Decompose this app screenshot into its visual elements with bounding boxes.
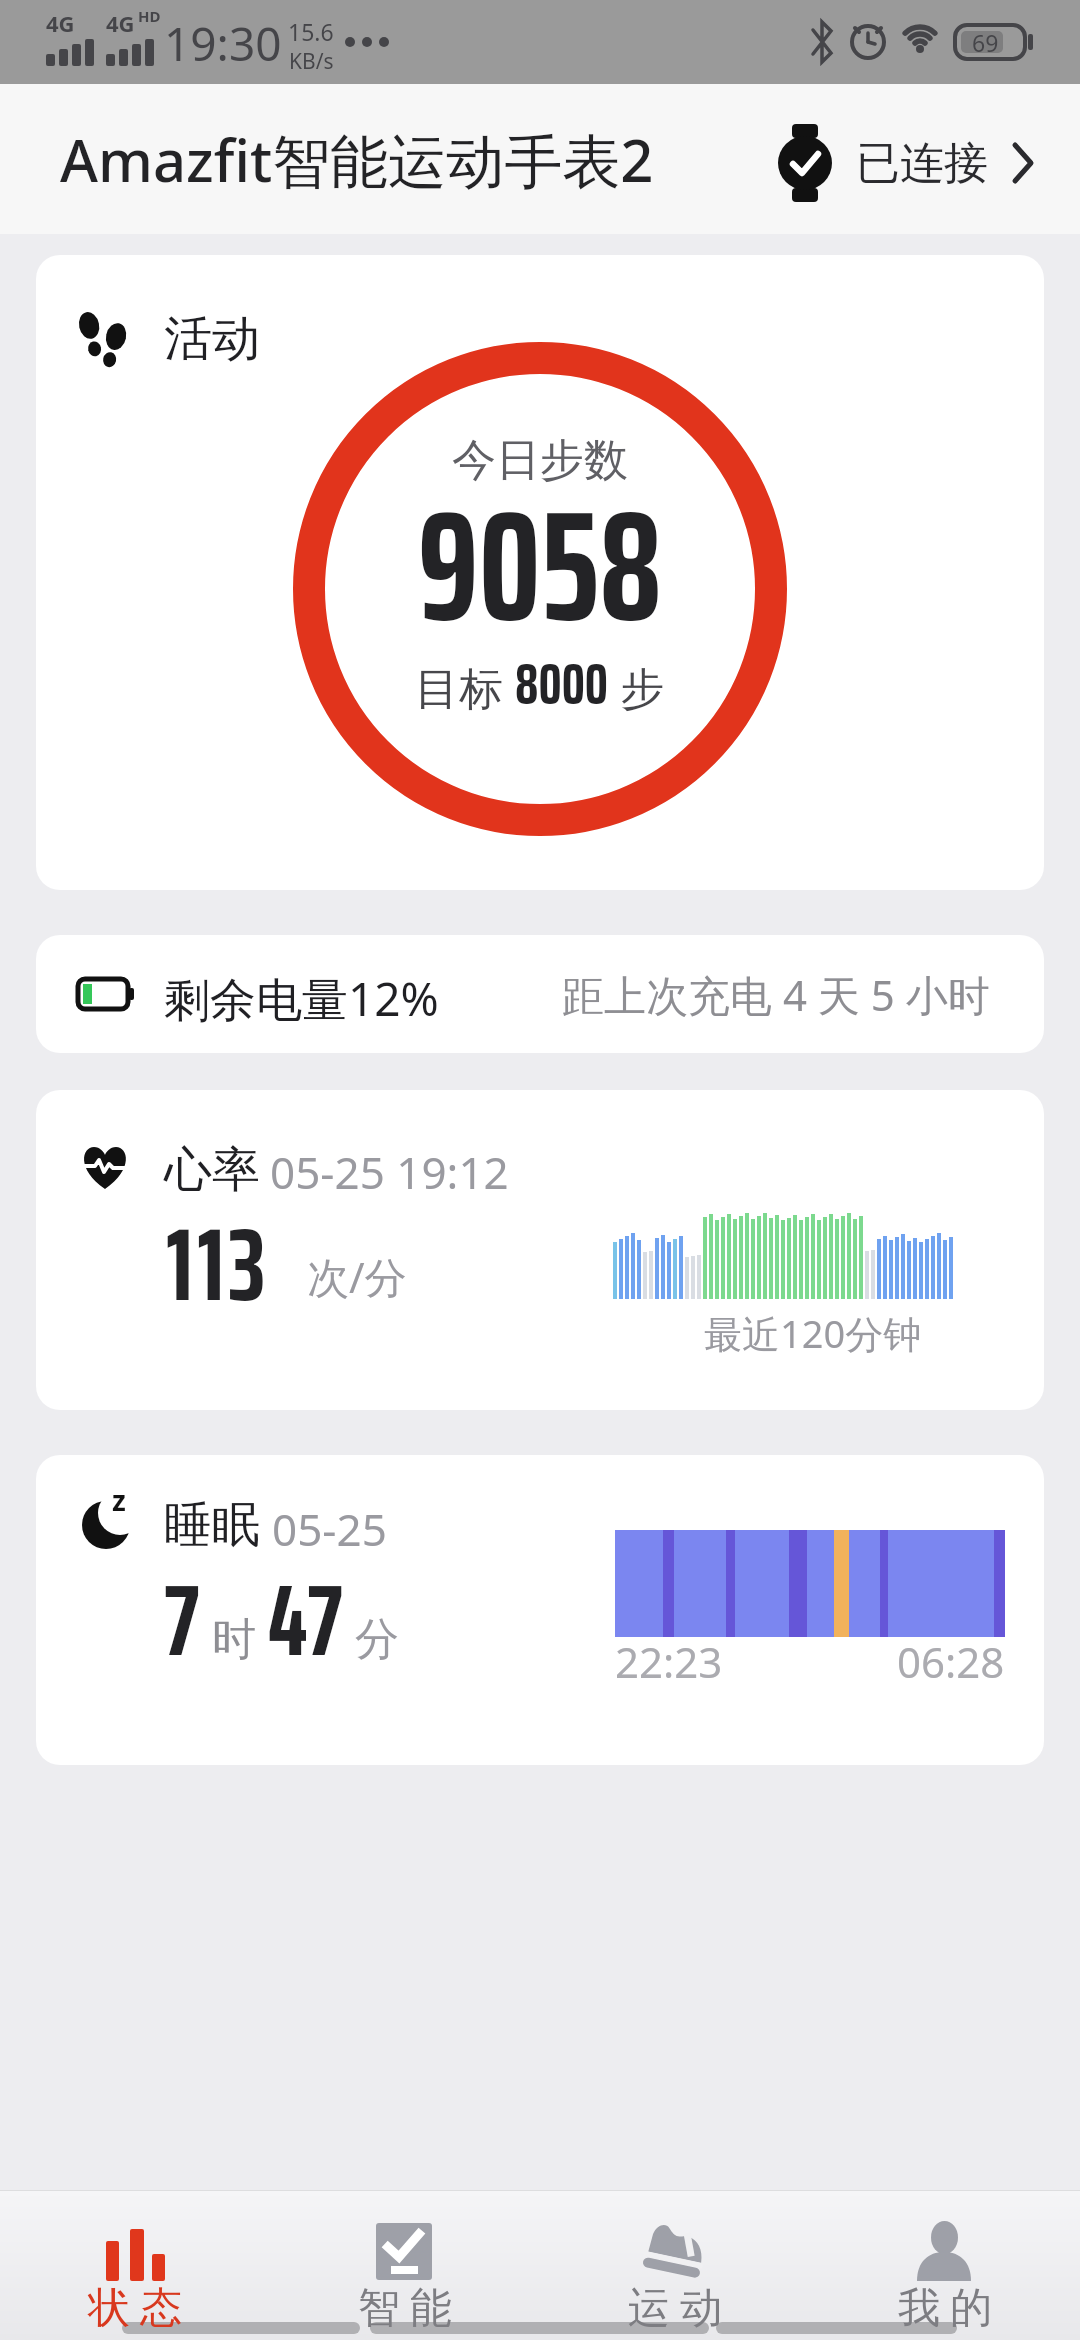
button[interactable]: z — [36, 1455, 1044, 1765]
staticText: 22:23 — [615, 1633, 723, 1690]
staticText: 目标 — [415, 657, 515, 717]
staticText: 心率 — [164, 1140, 260, 1200]
button[interactable]: 运动 — [540, 2190, 810, 2340]
staticText: HD — [138, 6, 161, 26]
button[interactable]: 活动 — [36, 255, 1044, 890]
button[interactable]: 已连接 — [778, 123, 1034, 203]
staticText: KB/s — [289, 47, 334, 76]
staticText: 时 — [212, 1612, 256, 1667]
staticText: 4G — [106, 8, 135, 38]
staticText: 睡眠 — [164, 1495, 260, 1555]
staticText: 8000 — [515, 638, 609, 729]
staticText: 智能 — [353, 2282, 457, 2335]
staticText: 05-25 — [272, 1499, 387, 1559]
staticText: 步 — [609, 657, 665, 717]
staticText: 分 — [355, 1612, 399, 1667]
staticText: 状态 — [83, 2282, 187, 2335]
staticText: 7 — [164, 1541, 200, 1698]
staticText: 次/分 — [307, 1248, 407, 1305]
staticText: 最近120分钟 — [704, 1307, 922, 1359]
staticText: 我的 — [893, 2282, 997, 2335]
staticText: Amazfit智能运动手表2 — [60, 120, 654, 199]
staticText: 今日步数 — [452, 433, 628, 488]
staticText: 活动 — [164, 309, 260, 369]
button[interactable]: 心率 — [36, 1090, 1044, 1410]
staticText: 15.6 — [288, 16, 334, 47]
staticText: 运动 — [623, 2282, 727, 2335]
staticText: 剩余电量12% — [164, 967, 439, 1030]
button[interactable]: 我的 — [810, 2190, 1080, 2340]
staticText: 已连接 — [856, 136, 988, 191]
button[interactable]: 状态 — [0, 2190, 270, 2340]
staticText: 05-25 19:12 — [270, 1142, 509, 1202]
staticText: 19:30 — [164, 12, 282, 75]
staticText: 06:28 — [897, 1633, 1005, 1690]
staticText: 113 — [166, 1184, 270, 1345]
staticText: 4G — [46, 8, 75, 38]
button[interactable]: 剩余电量12% — [36, 935, 1044, 1053]
staticText: 距上次充电 4 天 5 小时 — [562, 966, 990, 1023]
staticText: 47 — [268, 1541, 343, 1698]
staticText: 9058 — [418, 444, 662, 688]
button[interactable]: 智能 — [270, 2190, 540, 2340]
staticText: 69 — [972, 27, 999, 58]
staticText: z — [112, 1481, 126, 1519]
